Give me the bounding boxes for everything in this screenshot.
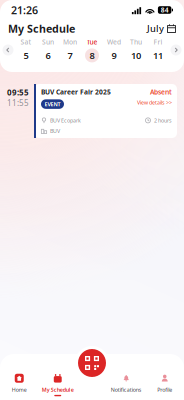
button[interactable]: Tue (81, 38, 103, 62)
button[interactable]: Previous week (1, 39, 15, 61)
button[interactable]: Mon (59, 38, 81, 62)
staticText: Sun (42, 38, 54, 46)
staticText: 11:55 (7, 98, 29, 108)
button[interactable]: Notifications (107, 372, 145, 396)
staticText: Profile (157, 386, 172, 393)
staticText: BUV Ecopark (50, 117, 81, 124)
staticText: My Schedule (8, 21, 75, 36)
button[interactable]: BUV Career Fair 2025 (34, 84, 177, 138)
staticText: Mon (63, 38, 77, 46)
staticText: 5 (23, 49, 28, 62)
staticText: 11 (153, 49, 163, 62)
staticText: 7 (67, 49, 72, 62)
staticText: Tue (86, 38, 97, 46)
button[interactable]: Sat (15, 38, 37, 62)
button[interactable]: July (147, 22, 176, 35)
staticText: BUV (50, 127, 60, 134)
staticText: Home (12, 386, 27, 393)
button[interactable]: Home (0, 372, 38, 396)
staticText: EVENT (44, 101, 60, 108)
button[interactable]: My Schedule (38, 372, 77, 396)
button[interactable]: Next week (169, 39, 183, 61)
staticText: View details >> (137, 99, 172, 106)
staticText: 84 (161, 6, 169, 14)
staticText: Fri (153, 38, 162, 46)
staticText: Absent (150, 87, 172, 96)
button[interactable]: Sun (37, 38, 59, 62)
staticText: 9 (111, 49, 116, 62)
staticText: Thu (130, 38, 142, 46)
button[interactable]: Profile (145, 372, 184, 396)
button[interactable]: Wed (103, 38, 125, 62)
staticText: 10 (131, 49, 141, 62)
staticText: BUV Career Fair 2025 (41, 87, 111, 96)
staticText: My Schedule (42, 386, 74, 393)
button[interactable]: Scan QR code (75, 346, 109, 380)
staticText: Wed (107, 38, 121, 46)
staticText: 6 (45, 49, 50, 62)
button[interactable]: Thu (125, 38, 147, 62)
staticText: 21:26 (11, 3, 38, 17)
staticText: 2 hours (154, 117, 172, 124)
staticText: July (147, 22, 164, 35)
staticText: 09:55 (7, 87, 29, 98)
staticText: 8 (89, 49, 94, 62)
staticText: Sat (20, 38, 31, 46)
staticText: Notifications (111, 386, 142, 393)
button[interactable]: Fri (147, 38, 169, 62)
